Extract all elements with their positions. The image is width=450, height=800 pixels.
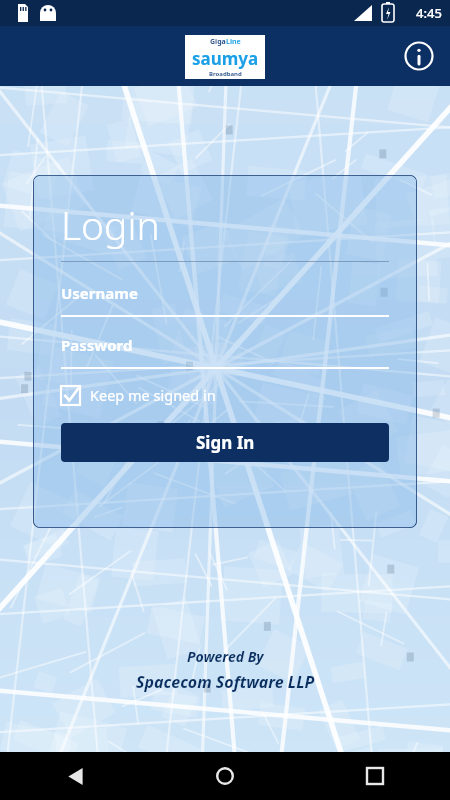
staticText: saumya	[192, 47, 259, 70]
button[interactable]: Username	[61, 283, 138, 303]
button[interactable]: Home	[150, 752, 300, 800]
staticText: Powered By	[187, 647, 264, 666]
staticText: Keep me signed in	[90, 385, 216, 405]
button[interactable]: Recent apps	[300, 752, 450, 800]
button[interactable]: Keep me signed in	[61, 383, 216, 407]
button[interactable]: Info	[402, 39, 436, 73]
staticText: Line	[226, 37, 241, 47]
staticText: Spacecom Software LLP	[136, 671, 315, 693]
staticText: Sign In	[196, 431, 255, 454]
staticText: 4:45	[416, 4, 442, 22]
button[interactable]: Back	[0, 752, 150, 800]
button[interactable]: Giga	[185, 35, 265, 79]
button[interactable]: Password	[61, 335, 133, 355]
staticText: Login	[61, 198, 160, 251]
staticText: Broadband	[209, 70, 242, 78]
button[interactable]: Sign In	[61, 423, 389, 462]
staticText: Giga	[210, 37, 226, 47]
